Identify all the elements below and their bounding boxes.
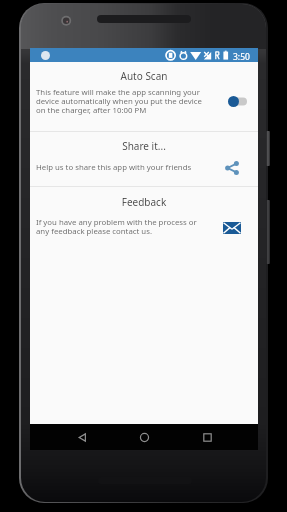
button[interactable]: Send feedback email bbox=[223, 222, 241, 234]
staticText: Share it... bbox=[30, 139, 258, 153]
staticText: This feature will make the app scanning … bbox=[36, 87, 206, 116]
button[interactable]: Share it... bbox=[30, 132, 258, 186]
button[interactable]: Share bbox=[225, 161, 239, 175]
staticText: 3:50 bbox=[233, 51, 250, 63]
button[interactable]: Auto Scan toggle bbox=[228, 95, 247, 108]
staticText: Feedback bbox=[30, 195, 258, 209]
button[interactable]: Auto Scan bbox=[30, 62, 258, 131]
button[interactable]: Back bbox=[71, 426, 93, 448]
button[interactable]: Feedback bbox=[30, 187, 258, 249]
staticText: Auto Scan bbox=[30, 69, 258, 83]
staticText: If you have any problem with the process… bbox=[36, 217, 206, 237]
button[interactable]: Home bbox=[133, 426, 155, 448]
button[interactable]: Recent apps bbox=[196, 426, 218, 448]
staticText: Help us to share this app with your frie… bbox=[36, 162, 211, 173]
